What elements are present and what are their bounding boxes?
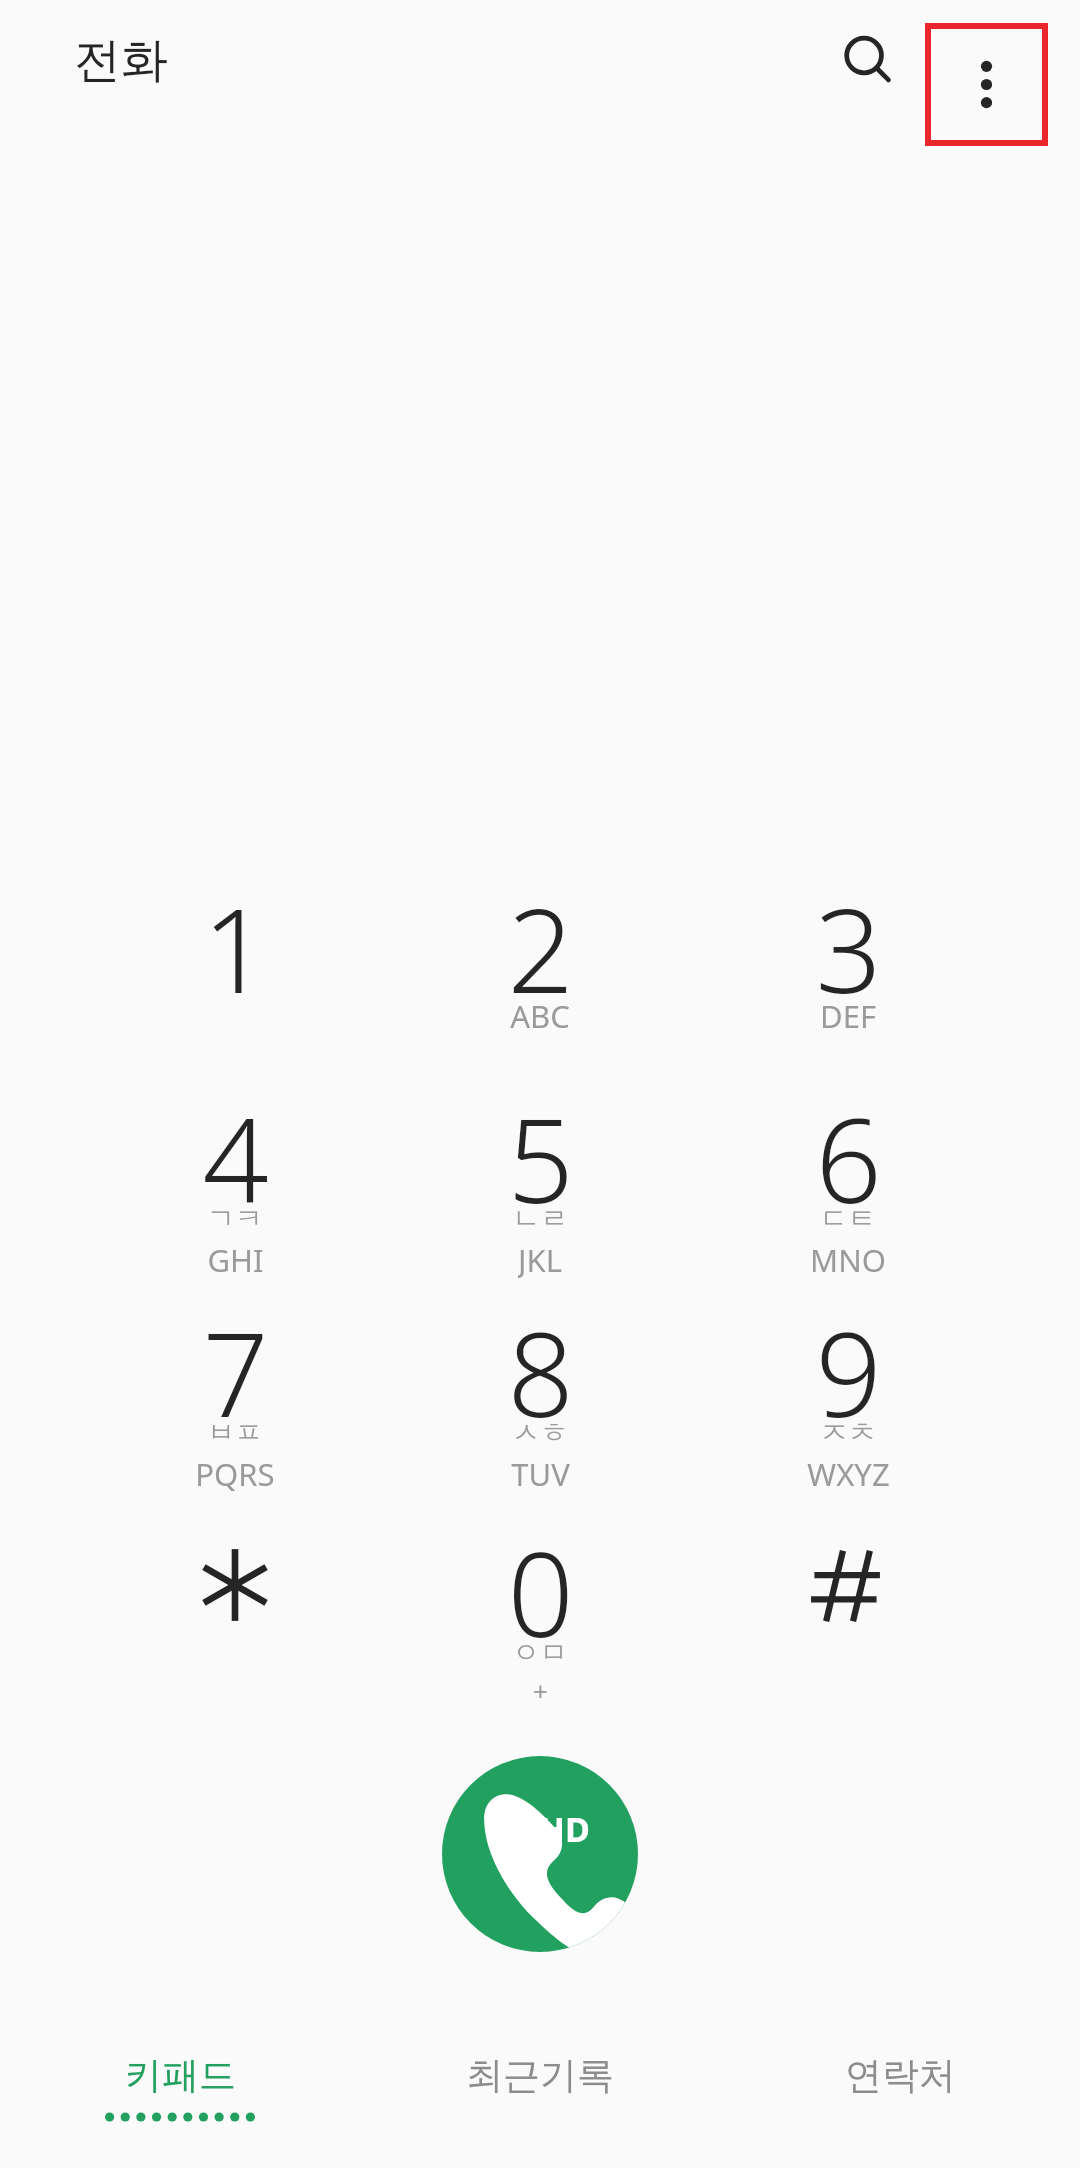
button[interactable]: 키패드 <box>0 2030 360 2168</box>
staticText: 7 <box>202 1293 269 1418</box>
staticText: 6 <box>815 1079 882 1204</box>
staticText: 최근기록 <box>466 2052 614 2099</box>
button[interactable]: Call <box>442 1756 638 1952</box>
button[interactable] <box>390 862 690 1070</box>
staticText: 전화 <box>74 31 168 90</box>
staticText: ㄷㅌ <box>820 1201 876 1236</box>
button[interactable] <box>85 1506 385 1714</box>
staticText: 연락처 <box>845 2052 956 2099</box>
button[interactable]: More options <box>928 26 1045 143</box>
staticText: 키패드 <box>125 2052 236 2099</box>
staticText: 8 <box>507 1293 574 1418</box>
staticText: ㄱㅋ <box>207 1201 263 1236</box>
button[interactable] <box>390 1072 690 1280</box>
staticText: ABC <box>510 995 570 1035</box>
button[interactable] <box>85 1286 385 1494</box>
button[interactable]: 최근기록 <box>360 2030 720 2168</box>
staticText: 1 <box>202 869 269 994</box>
staticText: TUV <box>511 1453 570 1493</box>
button[interactable] <box>85 1072 385 1280</box>
staticText: PQRS <box>195 1453 275 1493</box>
staticText: ㅂㅍ <box>207 1415 263 1450</box>
staticText: 3 <box>815 869 882 994</box>
staticText: DEF <box>820 995 876 1035</box>
staticText: ㄴㄹ <box>512 1201 568 1236</box>
button[interactable] <box>85 862 385 1070</box>
staticText: 2 <box>507 869 574 994</box>
staticText: HD <box>539 1806 590 1852</box>
staticText: ㅇㅁ <box>512 1635 568 1670</box>
staticText: 0 <box>507 1513 574 1638</box>
button[interactable] <box>698 1506 998 1714</box>
staticText: GHI <box>207 1239 264 1279</box>
staticText: ㅅㅎ <box>512 1415 568 1450</box>
button[interactable] <box>390 1286 690 1494</box>
button[interactable] <box>390 1506 690 1714</box>
button[interactable]: Search <box>808 0 928 120</box>
button[interactable] <box>698 1286 998 1494</box>
button[interactable]: 연락처 <box>720 2030 1080 2168</box>
staticText: WXYZ <box>807 1453 890 1493</box>
staticText: 5 <box>507 1079 574 1204</box>
staticText: MNO <box>810 1239 886 1279</box>
staticText: JKL <box>518 1239 562 1279</box>
button[interactable] <box>698 862 998 1070</box>
staticText: 4 <box>202 1079 269 1204</box>
staticText: ㅈㅊ <box>820 1415 876 1450</box>
button[interactable] <box>698 1072 998 1280</box>
staticText: 9 <box>815 1293 882 1418</box>
staticText: + <box>533 1673 548 1708</box>
